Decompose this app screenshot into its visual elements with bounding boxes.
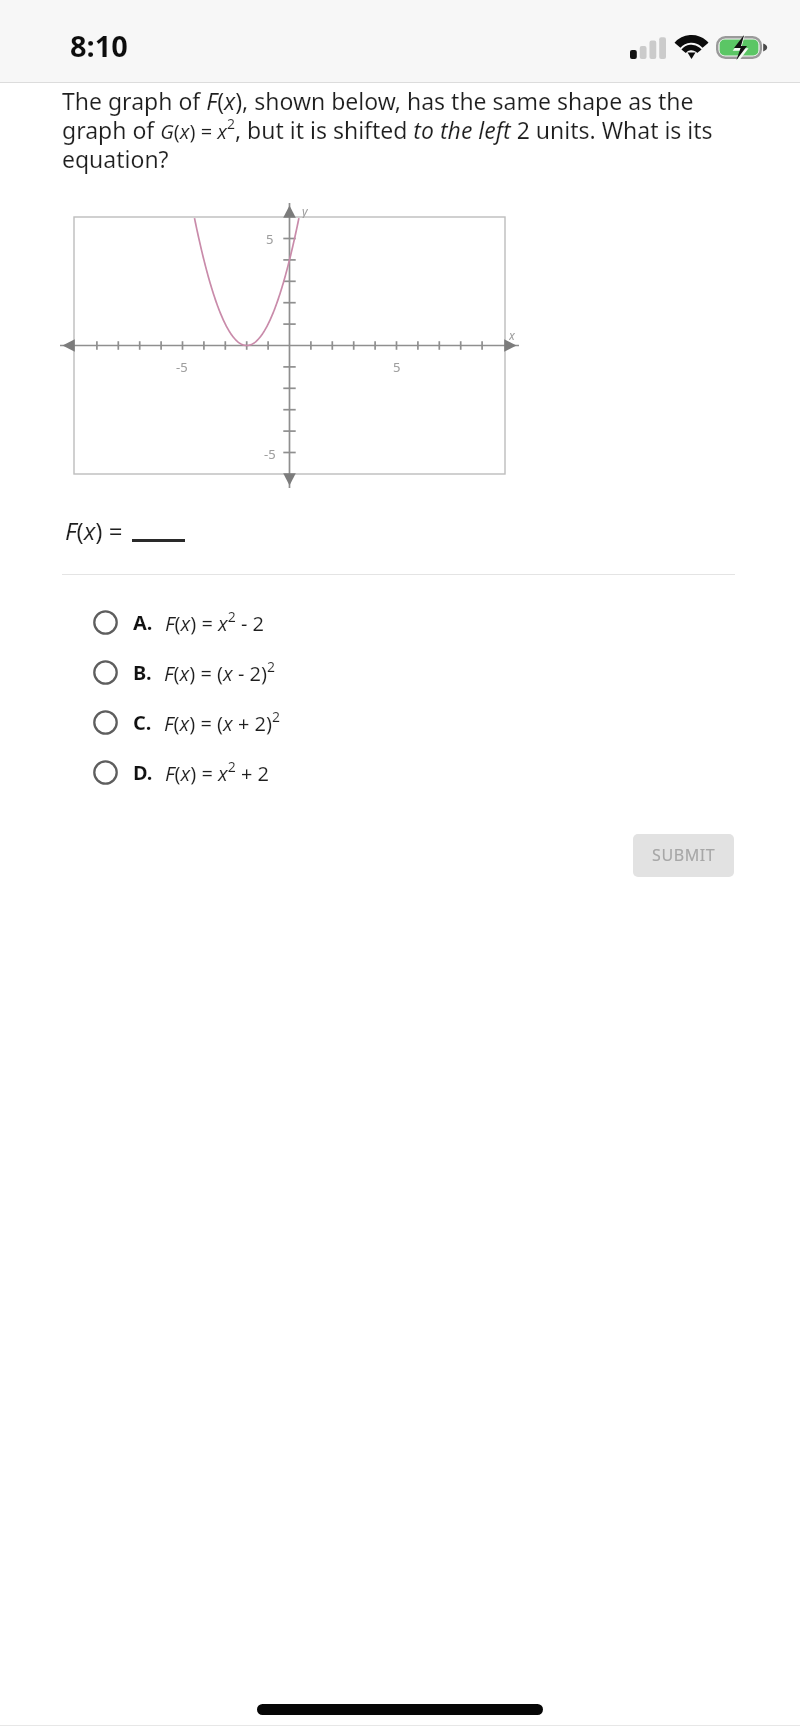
other: Cellular signal strength — [630, 37, 666, 59]
staticText: C. — [133, 709, 152, 736]
staticText: F(x) = (x - 2)2 — [164, 657, 275, 687]
staticText: 8:10 — [70, 26, 128, 65]
staticText: B. — [133, 659, 152, 686]
staticText: SUBMIT — [652, 844, 716, 866]
staticText: F(x) = — [65, 514, 123, 547]
button[interactable]: C. — [0, 697, 800, 747]
staticText: F(x) = (x + 2)2 — [164, 707, 280, 737]
other: Wi-Fi connected — [676, 35, 707, 59]
staticText: equation? — [62, 143, 169, 174]
button[interactable]: A. — [0, 597, 800, 647]
staticText: F(x) = x2 + 2 — [165, 757, 269, 787]
staticText: A. — [133, 609, 153, 636]
staticText: -5 — [264, 445, 276, 462]
staticText: y — [302, 203, 308, 218]
staticText: D. — [133, 759, 153, 786]
staticText: graph of G(x) = x2, but it is shifted to… — [62, 114, 713, 145]
staticText: 5 — [393, 358, 401, 375]
staticText: F(x) = x2 - 2 — [165, 607, 264, 637]
button[interactable]: D. — [0, 747, 800, 797]
staticText: The graph of F(x), shown below, has the … — [62, 85, 694, 116]
other: Battery charging — [716, 36, 769, 59]
button[interactable]: SUBMIT — [633, 834, 734, 877]
staticText: 5 — [266, 230, 274, 247]
staticText: x — [509, 327, 515, 342]
staticText: -5 — [176, 358, 188, 375]
button[interactable]: B. — [0, 647, 800, 697]
